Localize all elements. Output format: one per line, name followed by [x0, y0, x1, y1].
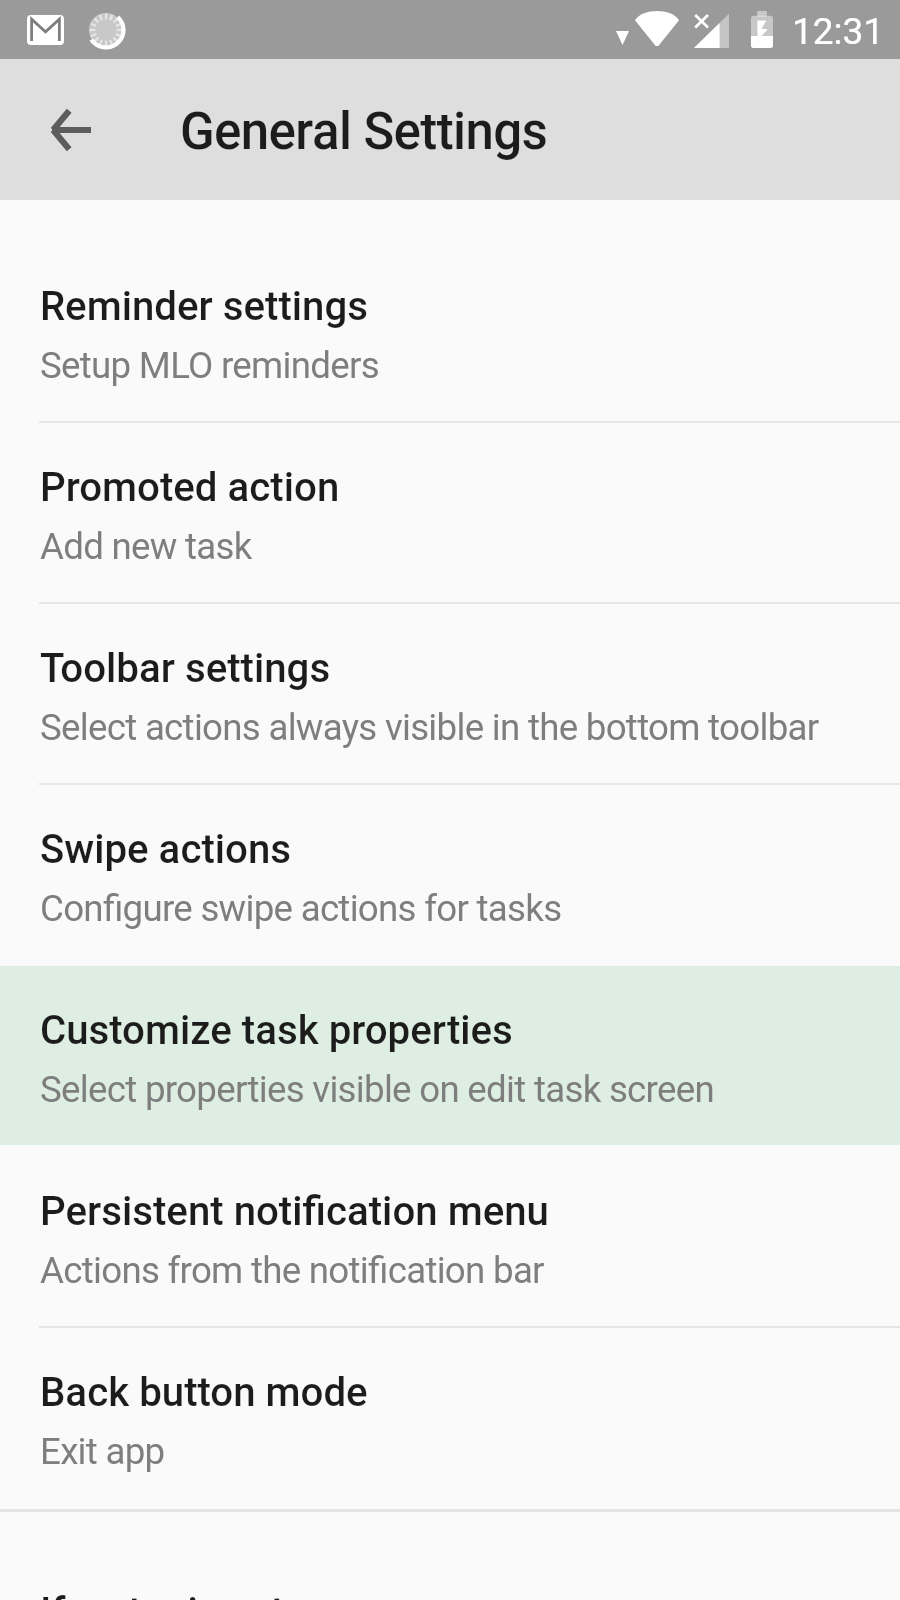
staticText: Promoted action	[40, 464, 340, 511]
staticText: If a star is set	[40, 1589, 285, 1600]
button[interactable]: If a star is set	[0, 1512, 900, 1600]
staticText: Actions from the notification bar	[40, 1249, 544, 1292]
button[interactable]: Customize task properties	[0, 966, 900, 1145]
staticText: Setup MLO reminders	[40, 344, 379, 387]
button[interactable]: Persistent notification menu	[0, 1147, 900, 1326]
staticText: Toolbar settings	[40, 645, 331, 692]
staticText: Back button mode	[40, 1369, 368, 1416]
button[interactable]: Back button mode	[0, 1328, 900, 1507]
button[interactable]: Promoted action	[0, 423, 900, 602]
staticText: Configure swipe actions for tasks	[40, 887, 562, 930]
staticText: Add new task	[40, 525, 252, 568]
button[interactable]: Swipe actions	[0, 785, 900, 964]
staticText: Select actions always visible in the bot…	[40, 706, 819, 749]
button[interactable]: Toolbar settings	[0, 604, 900, 783]
staticText: Exit app	[40, 1430, 165, 1473]
staticText: Select properties visible on edit task s…	[40, 1068, 714, 1111]
staticText: 12:31	[792, 10, 885, 53]
staticText: Customize task properties	[40, 1007, 513, 1054]
staticText: Persistent notification menu	[40, 1188, 549, 1235]
staticText: General Settings	[180, 102, 548, 162]
button[interactable]: Navigate up	[22, 82, 118, 178]
staticText: Swipe actions	[40, 826, 292, 873]
staticText: Reminder settings	[40, 283, 368, 330]
button[interactable]: Reminder settings	[0, 242, 900, 421]
